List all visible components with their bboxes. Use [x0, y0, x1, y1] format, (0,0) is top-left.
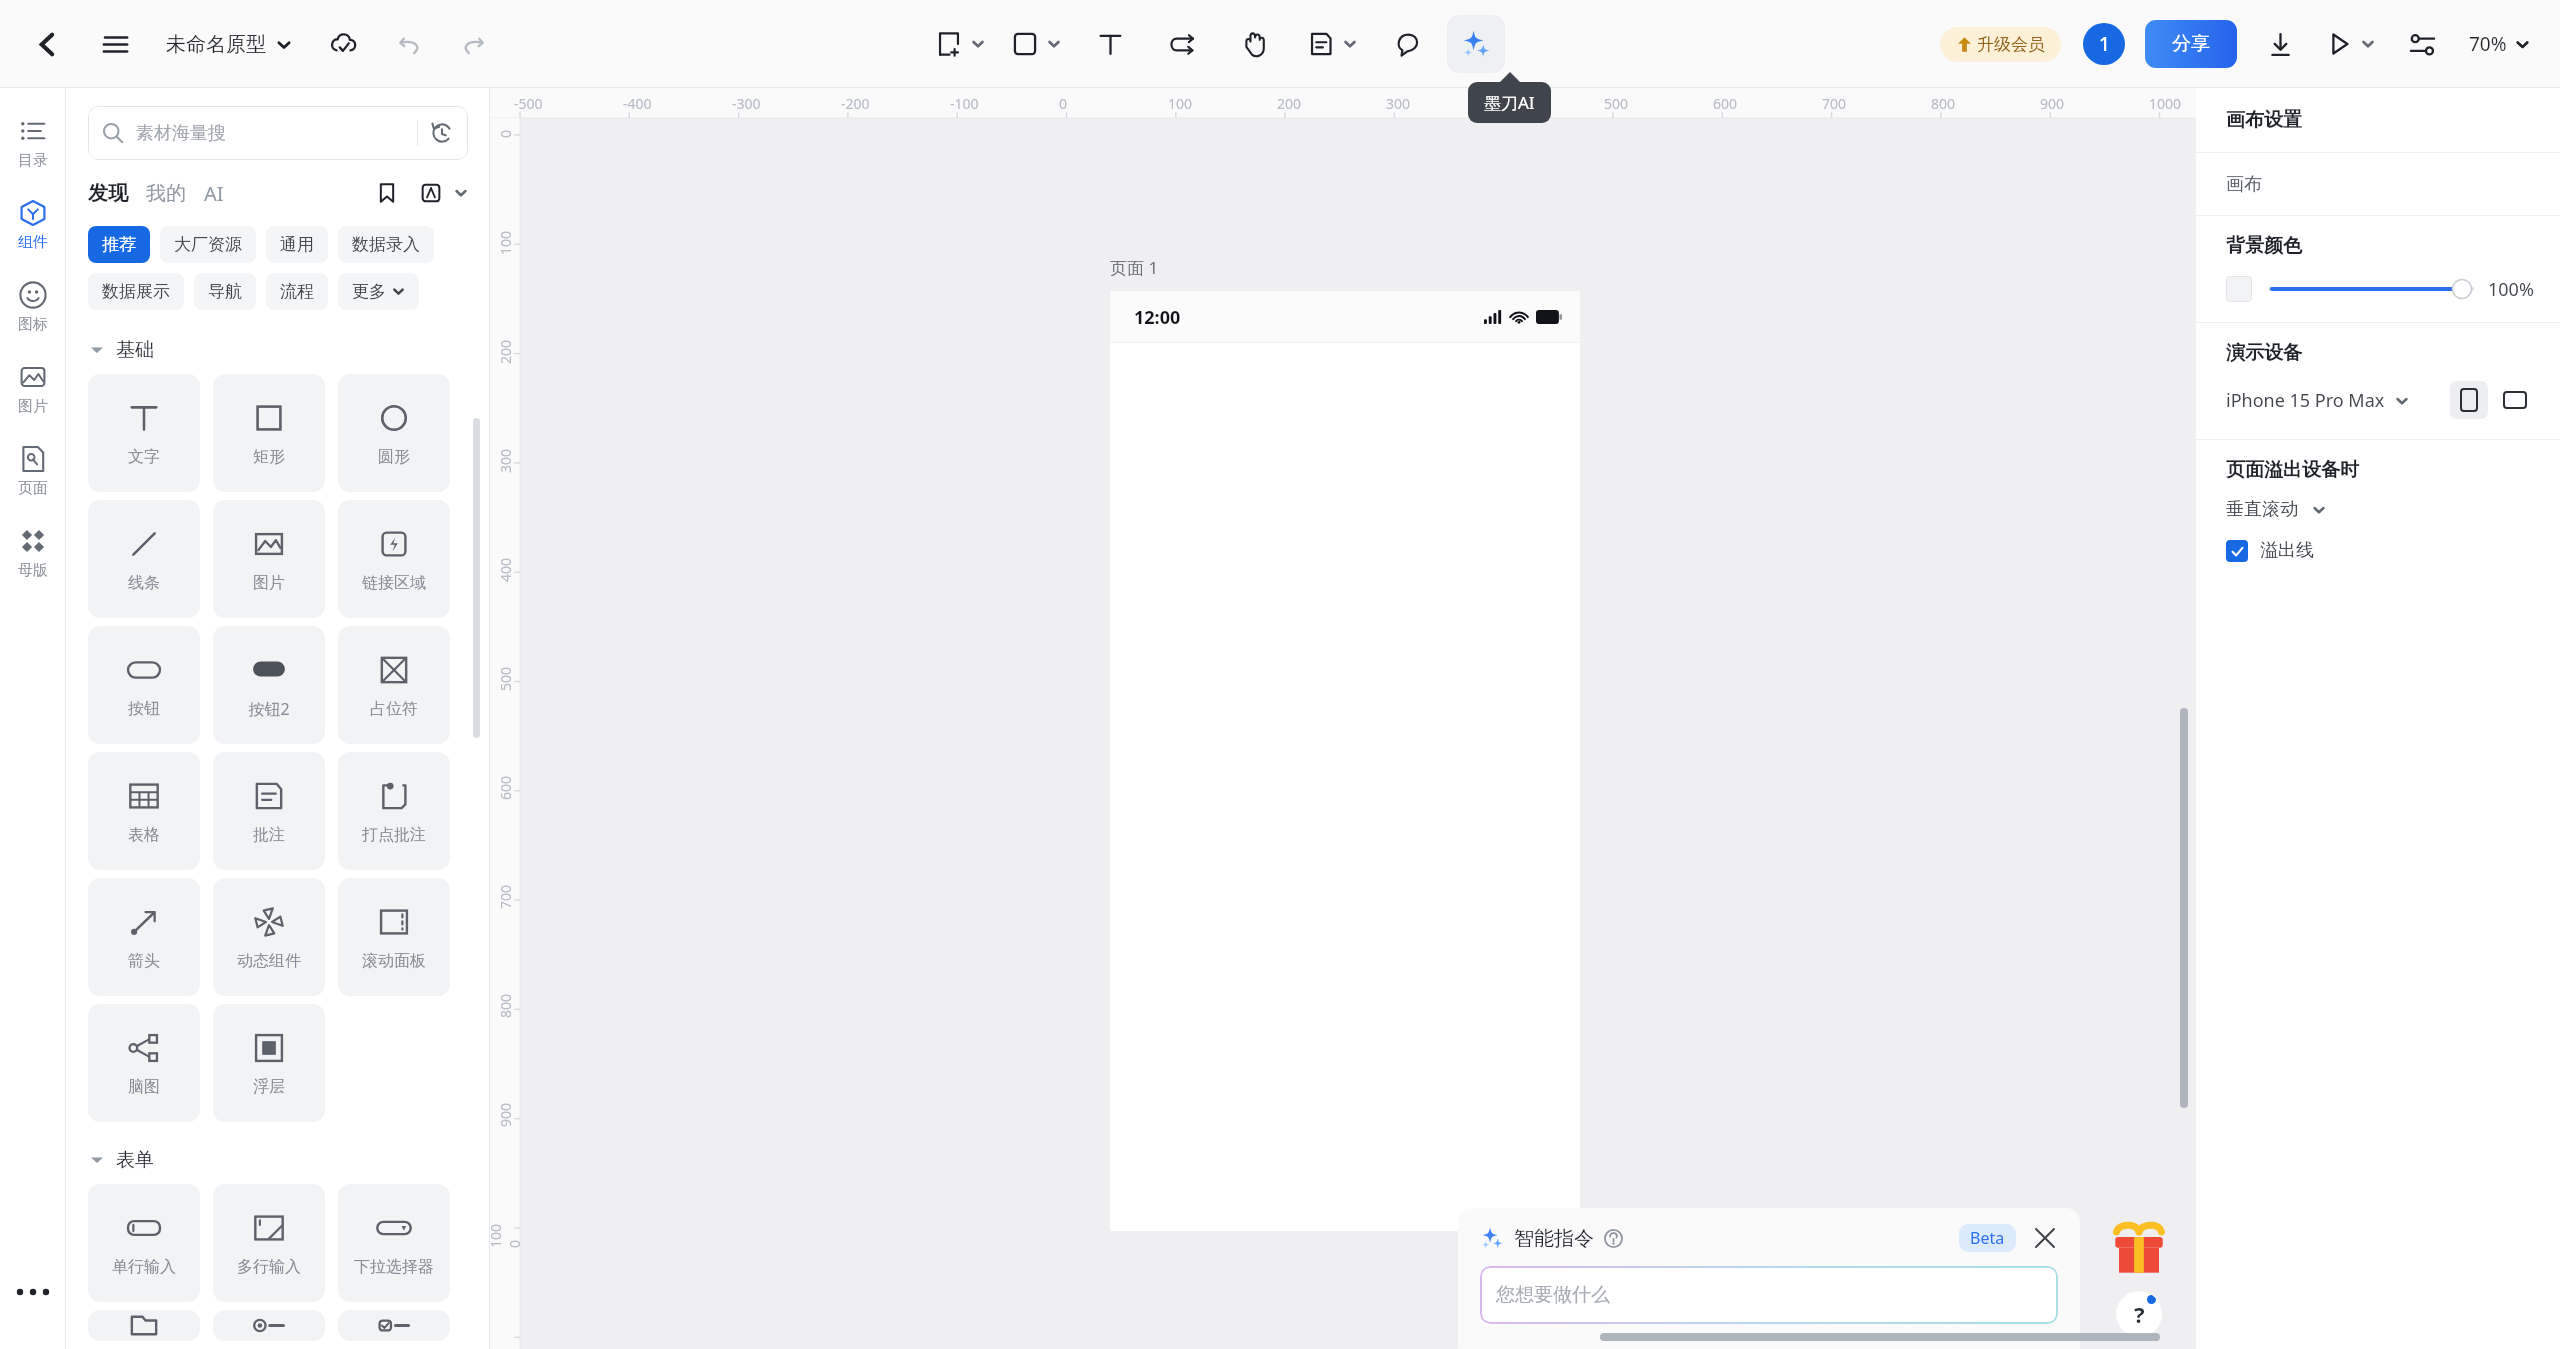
staticText: 组件: [18, 233, 48, 252]
button[interactable]: 基础: [66, 332, 490, 364]
button[interactable]: 图片: [213, 500, 325, 618]
button[interactable]: 打点批注: [338, 752, 450, 870]
button[interactable]: 表格: [88, 752, 200, 870]
button[interactable]: 您想要做什么: [1480, 1266, 2058, 1324]
button[interactable]: 目录: [0, 102, 66, 184]
button[interactable]: Bookmarks: [372, 178, 402, 208]
staticText: 600: [496, 775, 515, 800]
staticText: 400: [1495, 94, 1520, 113]
button[interactable]: 页面: [0, 430, 66, 512]
button[interactable]: 通用: [266, 226, 328, 263]
staticText: 表格: [128, 825, 160, 845]
staticText: 素材海量搜: [136, 122, 226, 145]
staticText: 100: [496, 230, 515, 255]
button[interactable]: iPhone 15 Pro Max: [2226, 388, 2409, 413]
button[interactable]: 未命名原型: [162, 24, 296, 65]
button[interactable]: 浮层: [213, 1004, 325, 1122]
button[interactable]: Text tool: [1087, 21, 1133, 67]
button[interactable]: Gift: [2112, 1223, 2166, 1277]
button[interactable]: Help: [2116, 1291, 2162, 1337]
button[interactable]: Note: [1303, 22, 1361, 66]
button[interactable]: 按钮2: [213, 626, 325, 744]
button[interactable]: 图片: [0, 348, 66, 430]
button[interactable]: [338, 1310, 450, 1341]
staticText: 墨刀AI: [1484, 91, 1535, 114]
button[interactable]: Landscape: [2496, 381, 2534, 419]
button[interactable]: 数据展示: [88, 273, 184, 310]
button[interactable]: 更多: [338, 273, 419, 310]
staticText: 600: [1713, 94, 1738, 113]
button[interactable]: 文字: [88, 374, 200, 492]
button[interactable]: 素材海量搜: [88, 106, 468, 160]
button[interactable]: 我的: [146, 181, 186, 206]
staticText: 矩形: [253, 447, 285, 467]
button[interactable]: 数据录入: [338, 226, 434, 263]
button[interactable]: 线条: [88, 500, 200, 618]
button[interactable]: 溢出线: [2226, 539, 2314, 562]
staticText: 单行输入: [112, 1257, 176, 1277]
button[interactable]: [213, 1310, 325, 1341]
button[interactable]: [2270, 278, 2472, 300]
button[interactable]: 脑图: [88, 1004, 200, 1122]
staticText: 演示设备: [2226, 341, 2302, 365]
staticText: 800: [496, 993, 515, 1018]
button[interactable]: Shape: [1007, 22, 1065, 66]
button[interactable]: 占位符: [338, 626, 450, 744]
button[interactable]: 链接区域: [338, 500, 450, 618]
button[interactable]: 升级会员: [1940, 27, 2061, 62]
staticText: 流程: [280, 281, 314, 302]
staticText: 500: [1604, 94, 1629, 113]
button[interactable]: 批注: [213, 752, 325, 870]
button[interactable]: Export: [2257, 21, 2303, 67]
staticText: 目录: [18, 151, 48, 170]
button[interactable]: 矩形: [213, 374, 325, 492]
button[interactable]: 按钮: [88, 626, 200, 744]
button[interactable]: 表单: [66, 1142, 490, 1174]
button[interactable]: 多行输入: [213, 1184, 325, 1302]
button[interactable]: 流程: [266, 273, 328, 310]
button[interactable]: Background colour: [2226, 276, 2252, 302]
button[interactable]: Add frame: [931, 22, 989, 66]
button[interactable]: 图标: [0, 266, 66, 348]
staticText: 图片: [18, 397, 48, 416]
button[interactable]: Saved to cloud: [320, 21, 366, 67]
button[interactable]: 下拉选择器: [338, 1184, 450, 1302]
button[interactable]: 单行输入: [88, 1184, 200, 1302]
button[interactable]: 箭头: [88, 878, 200, 996]
button[interactable]: [88, 1310, 200, 1341]
button[interactable]: 推荐: [88, 226, 150, 263]
button[interactable]: [1604, 1229, 1623, 1248]
button[interactable]: 发现: [88, 181, 128, 206]
button[interactable]: Account: [2083, 23, 2125, 65]
button[interactable]: 圆形: [338, 374, 450, 492]
button[interactable]: Connection: [1159, 21, 1205, 67]
staticText: 下拉选择器: [354, 1257, 434, 1277]
button[interactable]: Close: [2032, 1225, 2058, 1251]
button[interactable]: Back: [24, 21, 70, 67]
button[interactable]: 滚动面板: [338, 878, 450, 996]
button[interactable]: Menu: [92, 21, 138, 67]
button[interactable]: 母版: [0, 512, 66, 594]
button[interactable]: Redo: [450, 21, 496, 67]
button[interactable]: AI: [1447, 15, 1505, 73]
button[interactable]: Hand tool: [1231, 21, 1277, 67]
button[interactable]: 垂直滚动: [2226, 498, 2326, 521]
button[interactable]: AI: [204, 180, 224, 207]
button[interactable]: Settings: [2399, 21, 2445, 67]
button[interactable]: Comment: [1385, 21, 1431, 67]
staticText: 100%: [2488, 277, 2534, 302]
button[interactable]: 动态组件: [213, 878, 325, 996]
button[interactable]: 分享: [2145, 20, 2237, 68]
button[interactable]: Language: [416, 178, 446, 208]
button[interactable]: Portrait: [2450, 381, 2488, 419]
button[interactable]: Undo: [386, 21, 432, 67]
staticText: 更多: [352, 281, 386, 302]
staticText: 未命名原型: [166, 32, 266, 57]
staticText: 多行输入: [237, 1257, 301, 1277]
button[interactable]: Preview: [2321, 22, 2379, 66]
button[interactable]: 导航: [194, 273, 256, 310]
button[interactable]: 大厂资源: [160, 226, 256, 263]
staticText: 批注: [253, 825, 285, 845]
button[interactable]: 70%: [2465, 23, 2534, 65]
button[interactable]: 组件: [0, 184, 66, 266]
